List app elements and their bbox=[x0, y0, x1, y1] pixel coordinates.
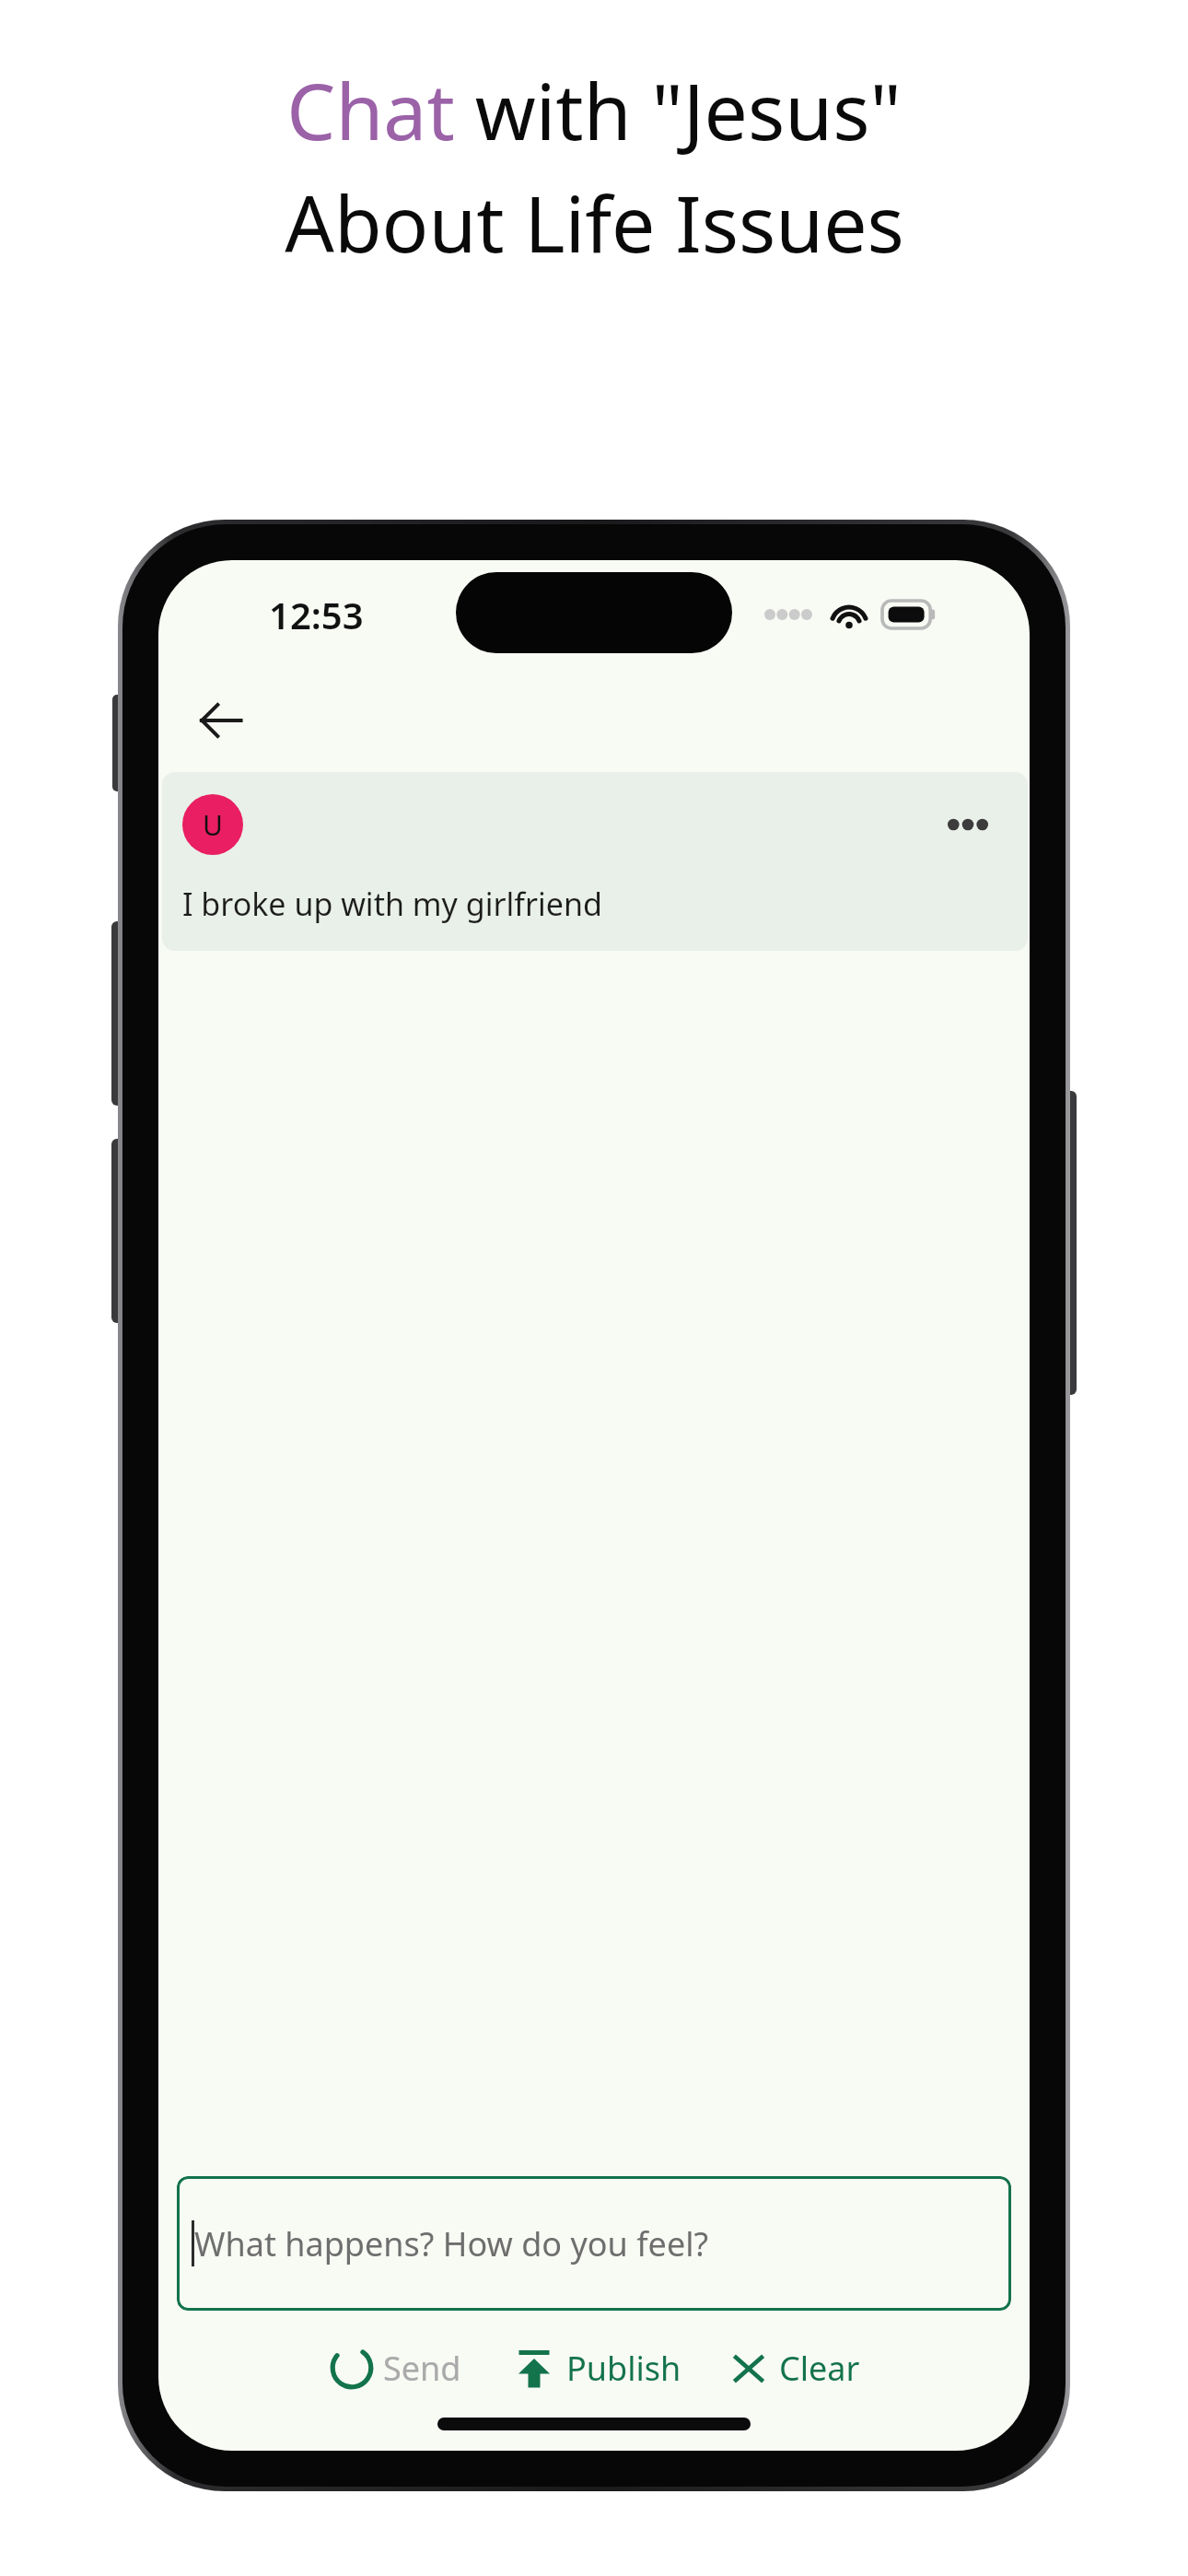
staticText: U bbox=[203, 806, 223, 844]
staticText: About Life Issues bbox=[285, 170, 904, 275]
staticText: Chat with "Jesus" bbox=[286, 57, 902, 162]
staticText: Clear bbox=[779, 2346, 860, 2391]
button[interactable]: Back bbox=[182, 682, 260, 759]
staticText: Send bbox=[383, 2346, 461, 2391]
staticText: Publish bbox=[566, 2346, 681, 2391]
button[interactable]: Clear bbox=[722, 2340, 866, 2396]
staticText: 12:53 bbox=[269, 590, 364, 639]
button[interactable]: U bbox=[162, 772, 1028, 951]
button[interactable]: More options bbox=[939, 796, 996, 853]
button[interactable]: Publish bbox=[506, 2339, 687, 2396]
staticText: What happens? How do you feel? bbox=[194, 2221, 709, 2266]
staticText: I broke up with my girlfriend bbox=[182, 883, 602, 925]
button[interactable]: Send bbox=[322, 2338, 467, 2397]
button[interactable]: What happens? How do you feel? bbox=[177, 2176, 1011, 2311]
